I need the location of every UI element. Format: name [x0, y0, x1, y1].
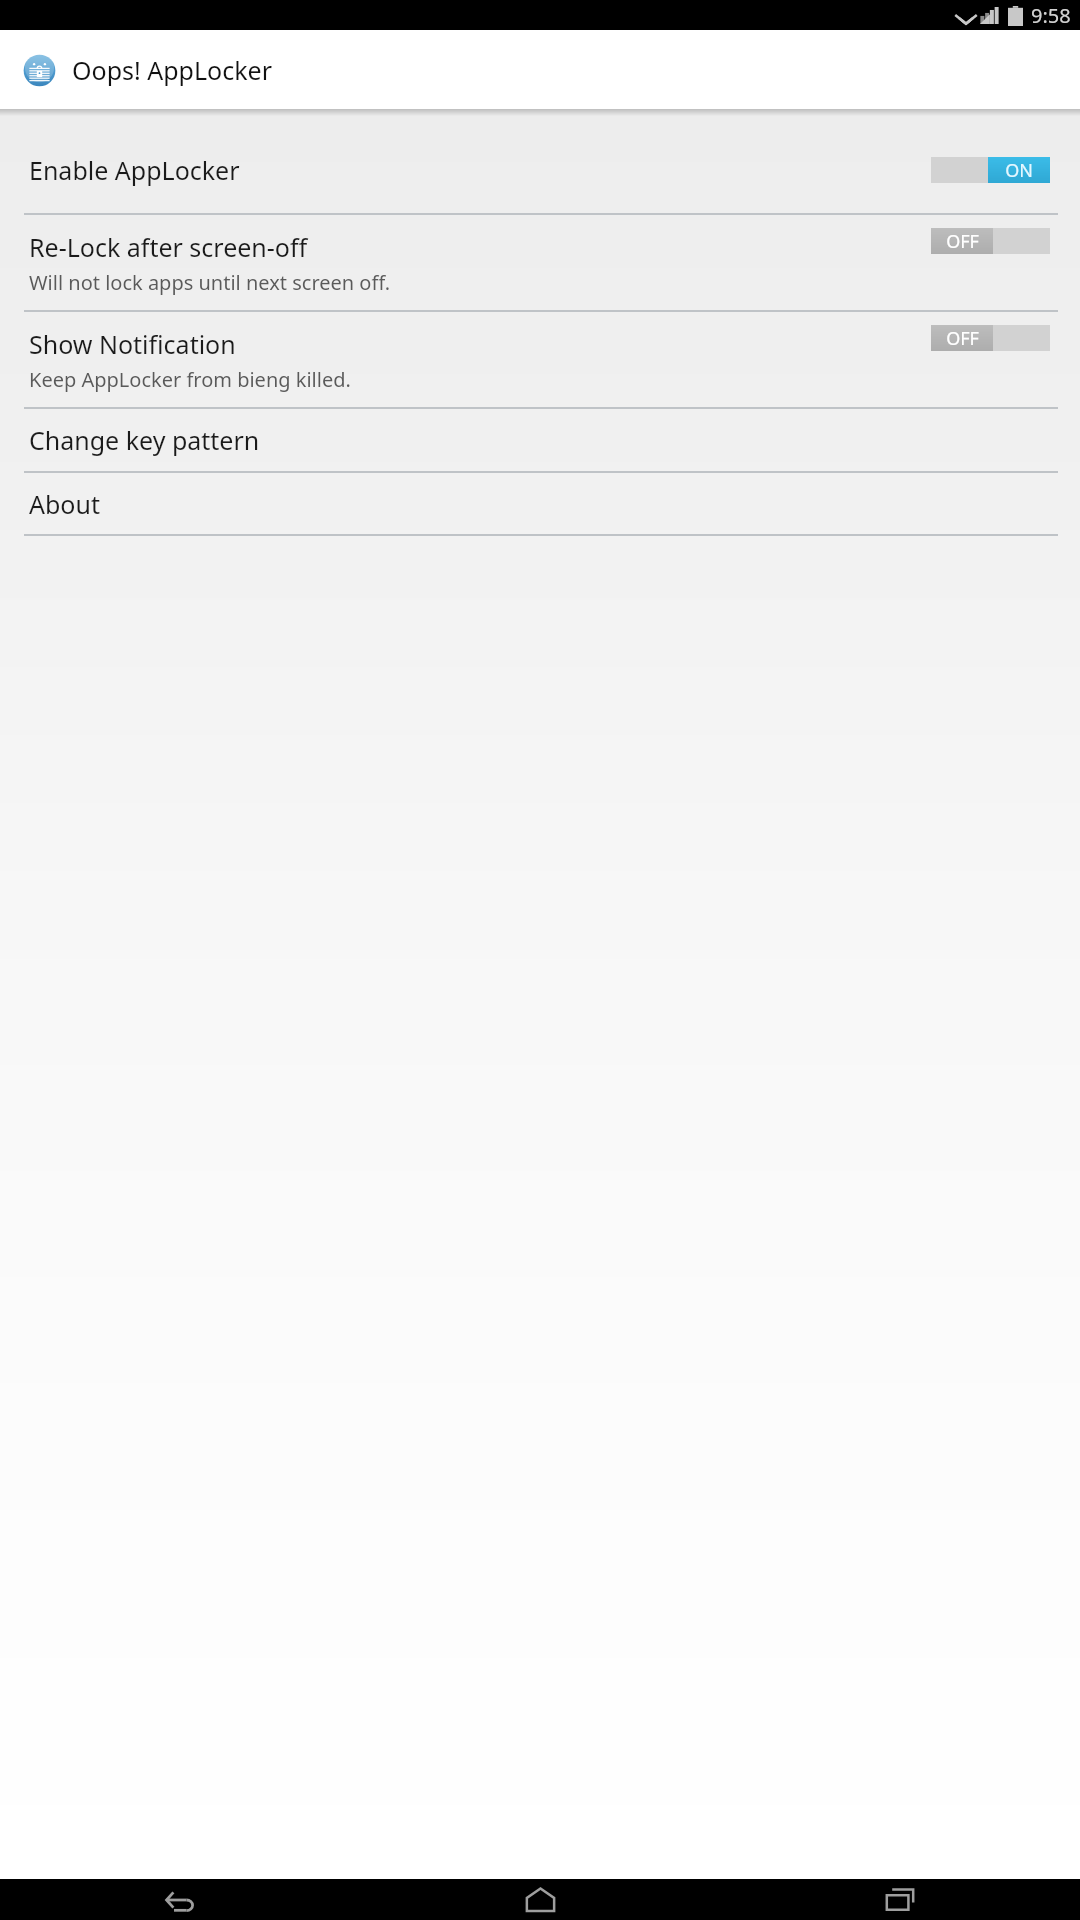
staticText: Keep AppLocker from bieng killed.: [29, 366, 351, 393]
button[interactable]: Back: [0, 1879, 360, 1920]
staticText: ON: [1005, 158, 1033, 183]
staticText: About: [29, 487, 100, 521]
staticText: OFF: [946, 326, 979, 351]
staticText: Re-Lock after screen-off: [29, 230, 308, 264]
button[interactable]: Recent apps: [720, 1879, 1080, 1920]
staticText: 9:58: [1031, 2, 1071, 29]
button[interactable]: Off: [931, 228, 1050, 254]
button[interactable]: Change key pattern: [0, 409, 1080, 471]
button[interactable]: Show Notification: [0, 312, 1080, 407]
staticText: Oops! AppLocker: [72, 53, 272, 87]
button[interactable]: Enable AppLocker: [0, 126, 1080, 213]
button[interactable]: Home: [360, 1879, 720, 1920]
staticText: Will not lock apps until next screen off…: [29, 269, 391, 296]
staticText: Enable AppLocker: [29, 153, 240, 187]
button[interactable]: On: [931, 157, 1050, 183]
button[interactable]: Off: [931, 325, 1050, 351]
button[interactable]: Re-Lock after screen-off: [0, 215, 1080, 310]
button[interactable]: About: [0, 473, 1080, 534]
staticText: Change key pattern: [29, 423, 260, 457]
staticText: Show Notification: [29, 327, 236, 361]
staticText: OFF: [946, 229, 979, 254]
